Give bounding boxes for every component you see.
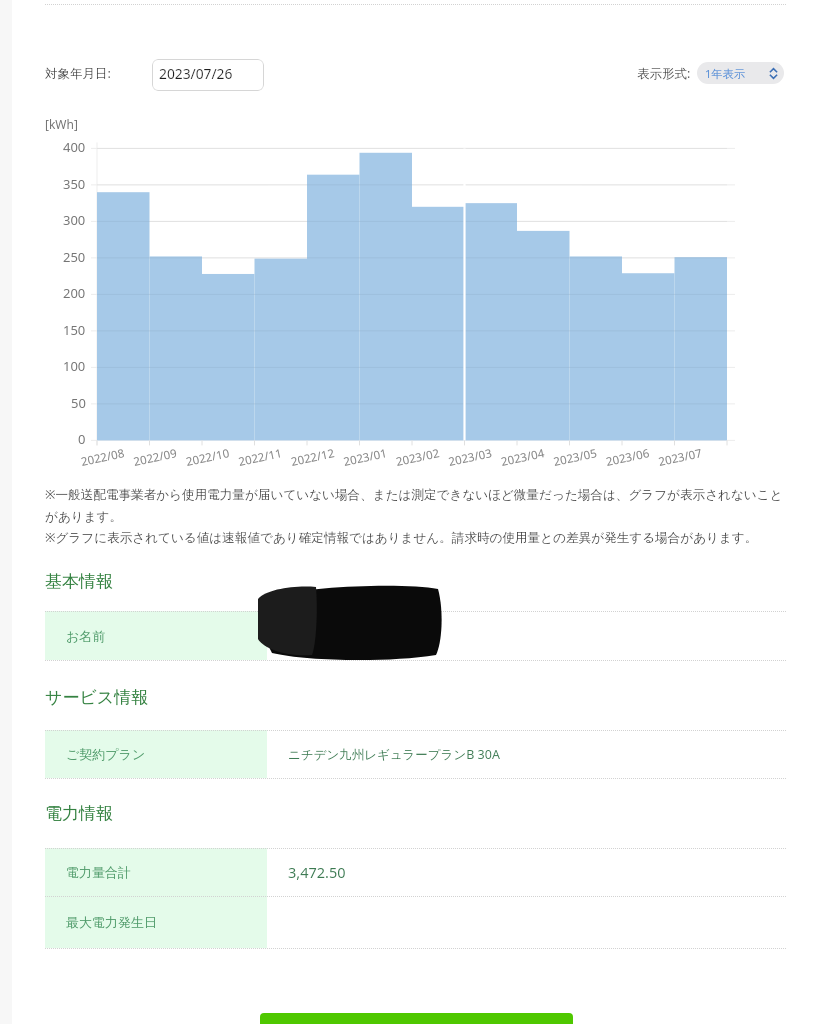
staticText: 対象年月日: <box>45 65 111 82</box>
staticText: 電力情報 <box>45 803 113 824</box>
staticText: 2023/07/26 <box>159 64 233 83</box>
staticText: 表示形式: <box>637 65 691 82</box>
staticText: ※一般送配電事業者から使用電力量が届いていない場合、または測定できないほど微量だ… <box>45 486 783 546</box>
button[interactable]: 最大電力発生日 <box>45 896 787 948</box>
button[interactable]: 電力量合計 <box>45 848 787 896</box>
button[interactable] <box>260 1013 573 1024</box>
button[interactable]: 2023/07/26 <box>152 59 264 91</box>
button[interactable]: 1年表示 <box>697 62 784 84</box>
staticText: [kWh] <box>45 116 78 132</box>
staticText: ニチデン九州レギュラープランB 30A <box>288 746 500 763</box>
staticText: サービス情報 <box>45 687 149 708</box>
staticText: 基本情報 <box>45 571 113 592</box>
button[interactable]: ご契約プラン <box>45 730 787 778</box>
staticText: 電力量合計 <box>66 864 131 880</box>
button[interactable]: お名前 <box>45 611 787 660</box>
staticText: お名前 <box>66 628 106 644</box>
staticText: ご契約プラン <box>66 746 146 762</box>
staticText: 3,472.50 <box>288 862 346 882</box>
staticText: 最大電力発生日 <box>66 914 157 930</box>
staticText: 1年表示 <box>705 66 746 81</box>
